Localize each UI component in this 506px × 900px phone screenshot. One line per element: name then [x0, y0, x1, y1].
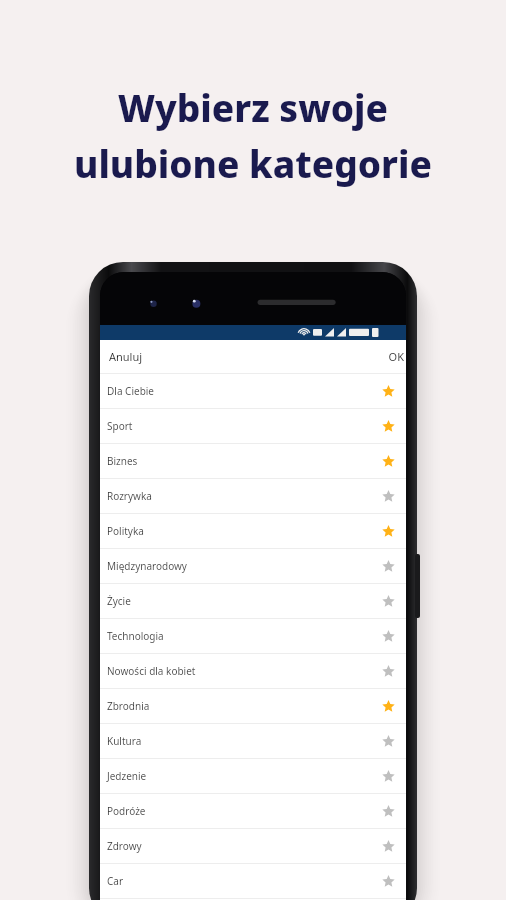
button[interactable]: Zbrodnia	[100, 689, 406, 723]
staticText: Dla Ciebie	[107, 384, 379, 398]
staticText: Podróże	[107, 804, 379, 818]
button[interactable]: Podróże	[100, 794, 406, 828]
button[interactable]: Add Car to favourites	[379, 872, 397, 890]
button[interactable]: Add Życie to favourites	[379, 592, 397, 610]
button[interactable]: Add Podróże to favourites	[379, 802, 397, 820]
button[interactable]: Add Jedzenie to favourites	[379, 767, 397, 785]
staticText: Życie	[107, 594, 379, 608]
button[interactable]: Biznes	[100, 444, 406, 478]
button[interactable]: Remove Polityka from favourites	[379, 522, 397, 540]
button[interactable]: Car	[100, 864, 406, 898]
staticText: Kultura	[107, 734, 379, 748]
staticText: Zbrodnia	[107, 699, 379, 713]
button[interactable]: Dla Ciebie	[100, 374, 406, 408]
button[interactable]: Polityka	[100, 514, 406, 548]
staticText: Sport	[107, 419, 379, 433]
button[interactable]: Międzynarodowy	[100, 549, 406, 583]
button[interactable]: Kultura	[100, 724, 406, 758]
staticText: Wybierz swoje	[118, 82, 388, 132]
button[interactable]: Anuluj	[107, 345, 145, 368]
button[interactable]: Remove Biznes from favourites	[379, 452, 397, 470]
staticText: Technologia	[107, 629, 379, 643]
button[interactable]: Add Kultura to favourites	[379, 732, 397, 750]
button[interactable]: Remove Zbrodnia from favourites	[379, 697, 397, 715]
button[interactable]: Zdrowy	[100, 829, 406, 863]
staticText: Anuluj	[109, 349, 143, 364]
button[interactable]: Życie	[100, 584, 406, 618]
staticText: Polityka	[107, 524, 379, 538]
staticText: ulubione kategorie	[74, 138, 432, 188]
button[interactable]: Add Międzynarodowy to favourites	[379, 557, 397, 575]
staticText: Rozrywka	[107, 489, 379, 503]
button[interactable]: OK	[386, 345, 406, 368]
button[interactable]: Add Technologia to favourites	[379, 627, 397, 645]
staticText: Nowości dla kobiet	[107, 664, 379, 678]
button[interactable]: Add Rozrywka to favourites	[379, 487, 397, 505]
button[interactable]: Remove Dla Ciebie from favourites	[379, 382, 397, 400]
button[interactable]: Nowości dla kobiet	[100, 654, 406, 688]
staticText: Car	[107, 874, 379, 888]
staticText: Jedzenie	[107, 769, 379, 783]
button[interactable]: Technologia	[100, 619, 406, 653]
button[interactable]: Jedzenie	[100, 759, 406, 793]
staticText: Biznes	[107, 454, 379, 468]
button[interactable]: Remove Sport from favourites	[379, 417, 397, 435]
button[interactable]: Sport	[100, 409, 406, 443]
button[interactable]: Add Zdrowy to favourites	[379, 837, 397, 855]
button[interactable]: Rozrywka	[100, 479, 406, 513]
button[interactable]: Add Nowości dla kobiet to favourites	[379, 662, 397, 680]
staticText: Międzynarodowy	[107, 559, 379, 573]
staticText: Zdrowy	[107, 839, 379, 853]
staticText: OK	[388, 349, 404, 364]
